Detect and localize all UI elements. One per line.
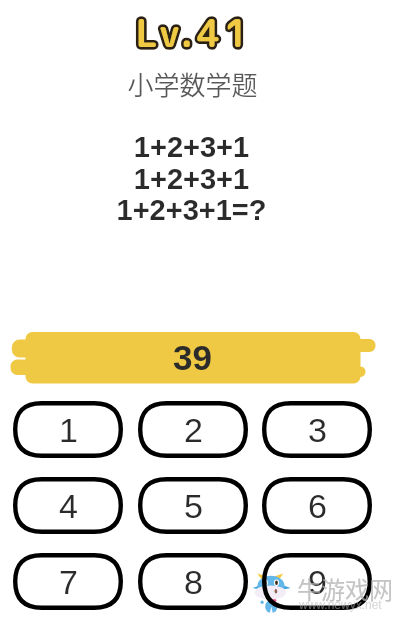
staticText: 8 bbox=[184, 563, 203, 601]
staticText: 1+2+3+1=? bbox=[0, 194, 388, 619]
button[interactable]: 8 bbox=[138, 553, 248, 610]
staticText: 7 bbox=[59, 563, 78, 601]
staticText: 1+2+3+1 bbox=[0, 163, 388, 619]
staticText: 4 bbox=[59, 487, 78, 525]
button[interactable]: 3 bbox=[262, 401, 372, 458]
staticText: 1 bbox=[59, 411, 78, 449]
staticText: 5 bbox=[184, 487, 203, 525]
button[interactable]: 2 bbox=[138, 401, 248, 458]
staticText: 6 bbox=[308, 487, 327, 525]
button[interactable]: 7 bbox=[13, 553, 123, 610]
staticText: www.newyx.net bbox=[299, 598, 382, 611]
button[interactable]: 9 bbox=[262, 553, 372, 610]
button[interactable]: 4 bbox=[13, 477, 123, 534]
button[interactable]: 1 bbox=[13, 401, 123, 458]
staticText: 39 bbox=[0, 338, 389, 619]
staticText: Lv.41 bbox=[0, 7, 390, 619]
staticText: 3 bbox=[308, 411, 327, 449]
button[interactable]: 6 bbox=[262, 477, 372, 534]
button[interactable]: 5 bbox=[138, 477, 248, 534]
staticText: Lv.41 bbox=[0, 7, 390, 619]
staticText: 牛游戏网 bbox=[297, 571, 393, 606]
staticText: 1+2+3+1 bbox=[0, 131, 388, 619]
staticText: 9 bbox=[308, 563, 327, 601]
staticText: 小学数学题 bbox=[0, 65, 389, 619]
staticText: 2 bbox=[184, 411, 203, 449]
